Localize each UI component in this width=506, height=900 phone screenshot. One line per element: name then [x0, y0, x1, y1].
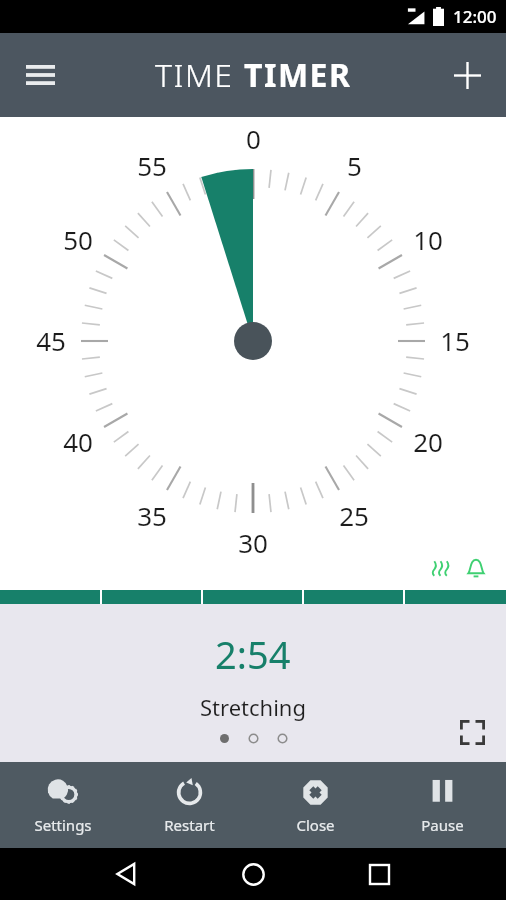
- button[interactable]: Fullscreen: [452, 712, 492, 752]
- button[interactable]: Pause: [379, 762, 506, 848]
- staticText: 25: [339, 498, 369, 533]
- staticText: Stretching: [200, 692, 306, 722]
- staticText: 0: [246, 121, 261, 156]
- staticText: 35: [137, 498, 167, 533]
- staticText: 10: [413, 222, 443, 257]
- button[interactable]: Page 3: [277, 733, 288, 744]
- staticText: 2:54: [215, 628, 291, 680]
- button[interactable]: Page 2: [248, 733, 259, 744]
- staticText: 50: [63, 222, 93, 257]
- button[interactable]: Restart: [126, 762, 252, 848]
- staticText: 30: [238, 525, 268, 560]
- button[interactable]: Alarm sound: [464, 556, 488, 580]
- staticText: 40: [63, 424, 93, 459]
- staticText: 20: [413, 424, 443, 459]
- staticText: 15: [440, 323, 470, 358]
- button[interactable]: Vibrate: [430, 556, 454, 580]
- button[interactable]: Home: [190, 854, 316, 894]
- button[interactable]: Back: [64, 854, 190, 894]
- staticText: 55: [137, 148, 167, 183]
- button[interactable]: Settings: [0, 762, 126, 848]
- staticText: TIME: [155, 53, 244, 97]
- button[interactable]: Recent apps: [316, 854, 442, 894]
- staticText: 45: [36, 323, 66, 358]
- button[interactable]: Close: [252, 762, 379, 848]
- staticText: Pause: [421, 815, 464, 835]
- staticText: 12:00: [453, 5, 497, 28]
- button[interactable]: Page 1: [219, 733, 230, 744]
- staticText: 5: [347, 148, 362, 183]
- staticText: Restart: [164, 815, 215, 835]
- staticText: Close: [296, 815, 335, 835]
- staticText: Settings: [34, 815, 92, 835]
- button[interactable]: Add timer: [442, 50, 492, 100]
- staticText: TIMER: [244, 53, 352, 97]
- button[interactable]: Menu: [12, 47, 68, 103]
